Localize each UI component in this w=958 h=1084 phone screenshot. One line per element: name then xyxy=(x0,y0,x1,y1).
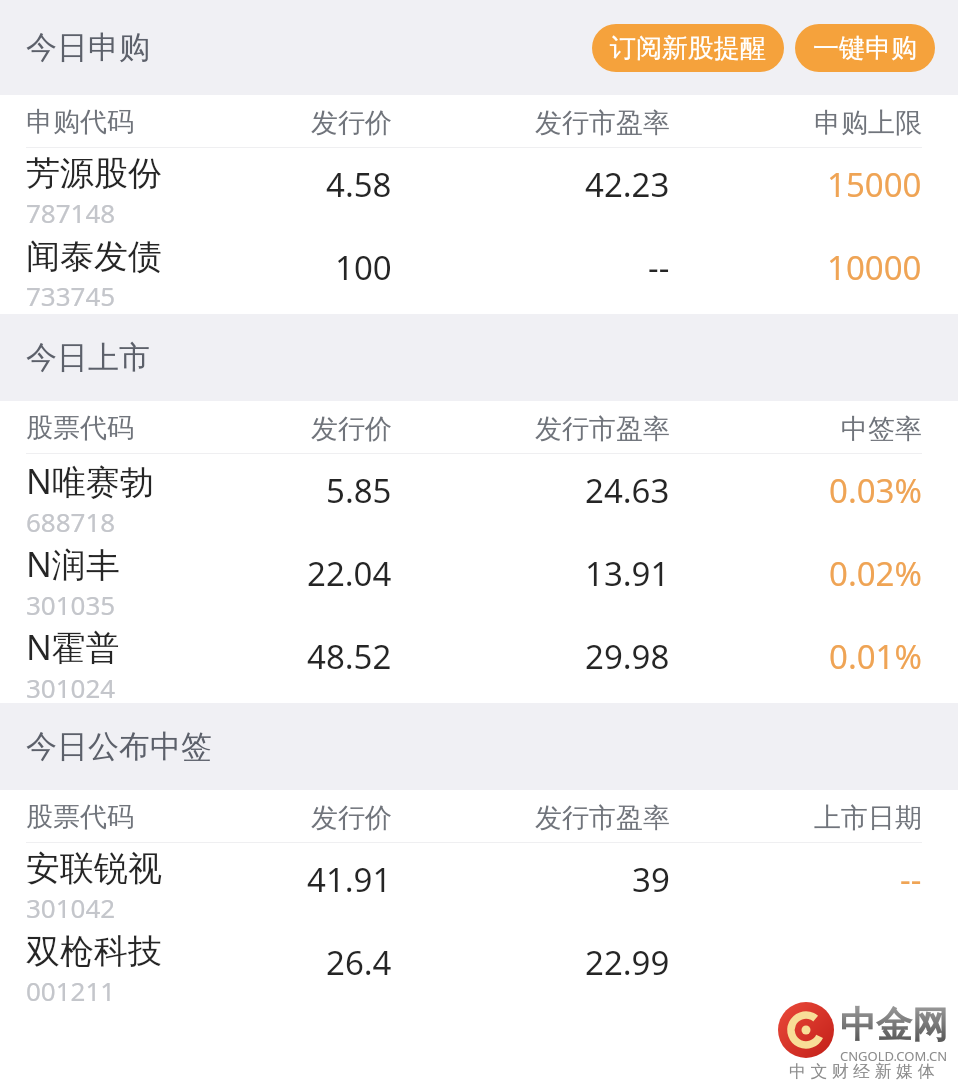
button[interactable]: 订阅新股提醒 xyxy=(592,24,784,72)
staticText: 15000 xyxy=(827,162,922,207)
staticText: 订阅新股提醒 xyxy=(610,32,766,65)
staticText: 301035 xyxy=(26,587,116,622)
staticText: 688718 xyxy=(26,504,116,539)
staticText: 安联锐视 xyxy=(26,847,162,890)
staticText: 0.02% xyxy=(829,551,922,596)
staticText: 48.52 xyxy=(307,634,392,679)
staticText: 13.91 xyxy=(585,551,670,596)
staticText: 闻泰发债 xyxy=(26,235,162,278)
staticText: N润丰 xyxy=(26,541,120,587)
staticText: 39 xyxy=(632,857,670,902)
staticText: 10000 xyxy=(827,245,922,290)
staticText: 22.04 xyxy=(307,551,392,596)
button[interactable]: N唯赛勃 xyxy=(0,454,958,537)
staticText: 双枪科技 xyxy=(26,930,162,973)
staticText: 5.85 xyxy=(326,468,392,513)
button[interactable]: N霍普 xyxy=(0,620,958,703)
staticText: 发行价 xyxy=(311,106,392,140)
staticText: 申购上限 xyxy=(814,106,922,140)
staticText: 发行市盈率 xyxy=(535,106,670,140)
button[interactable]: 闻泰发债 xyxy=(0,231,958,314)
staticText: 发行价 xyxy=(311,801,392,835)
staticText: 股票代码 xyxy=(26,800,134,834)
staticText: 41.91 xyxy=(307,857,392,902)
button[interactable]: 双枪科技 xyxy=(0,926,958,1009)
staticText: -- xyxy=(900,857,922,902)
staticText: 4.58 xyxy=(326,162,392,207)
staticText: 0.03% xyxy=(829,468,922,513)
staticText: 733745 xyxy=(26,278,116,313)
staticText: 今日申购 xyxy=(26,28,150,67)
staticText: 一键申购 xyxy=(813,32,917,65)
staticText: 股票代码 xyxy=(26,411,134,445)
staticText: 发行市盈率 xyxy=(535,801,670,835)
staticText: 787148 xyxy=(26,195,116,230)
staticText: 中签率 xyxy=(841,412,922,446)
staticText: 001211 xyxy=(26,973,116,1008)
staticText: 申购代码 xyxy=(26,105,134,139)
button[interactable]: 一键申购 xyxy=(795,24,935,72)
staticText: CNGOLD.COM.CN xyxy=(840,1047,948,1065)
staticText: 今日上市 xyxy=(26,338,150,377)
staticText: 301042 xyxy=(26,890,116,925)
staticText: 301024 xyxy=(26,670,116,705)
staticText: 上市日期 xyxy=(814,801,922,835)
staticText: 发行市盈率 xyxy=(535,412,670,446)
staticText: N霍普 xyxy=(26,624,120,670)
staticText: 0.01% xyxy=(829,634,922,679)
staticText: 芳源股份 xyxy=(26,152,162,195)
staticText: 100 xyxy=(335,245,392,290)
staticText: N唯赛勃 xyxy=(26,458,154,504)
staticText: 中 文 财 经 新 媒 体 xyxy=(789,1059,935,1082)
staticText: 中金网 xyxy=(840,1002,948,1047)
button[interactable]: 芳源股份 xyxy=(0,148,958,231)
button[interactable]: N润丰 xyxy=(0,537,958,620)
staticText: 24.63 xyxy=(585,468,670,513)
staticText: 29.98 xyxy=(585,634,670,679)
other: 中金网 CNGOLD watermark xyxy=(776,1002,948,1082)
staticText: 发行价 xyxy=(311,412,392,446)
staticText: 42.23 xyxy=(585,162,670,207)
staticText: 22.99 xyxy=(585,940,670,985)
button[interactable]: 安联锐视 xyxy=(0,843,958,926)
staticText: 26.4 xyxy=(326,940,392,985)
staticText: -- xyxy=(648,245,670,290)
staticText: 今日公布中签 xyxy=(26,727,212,766)
